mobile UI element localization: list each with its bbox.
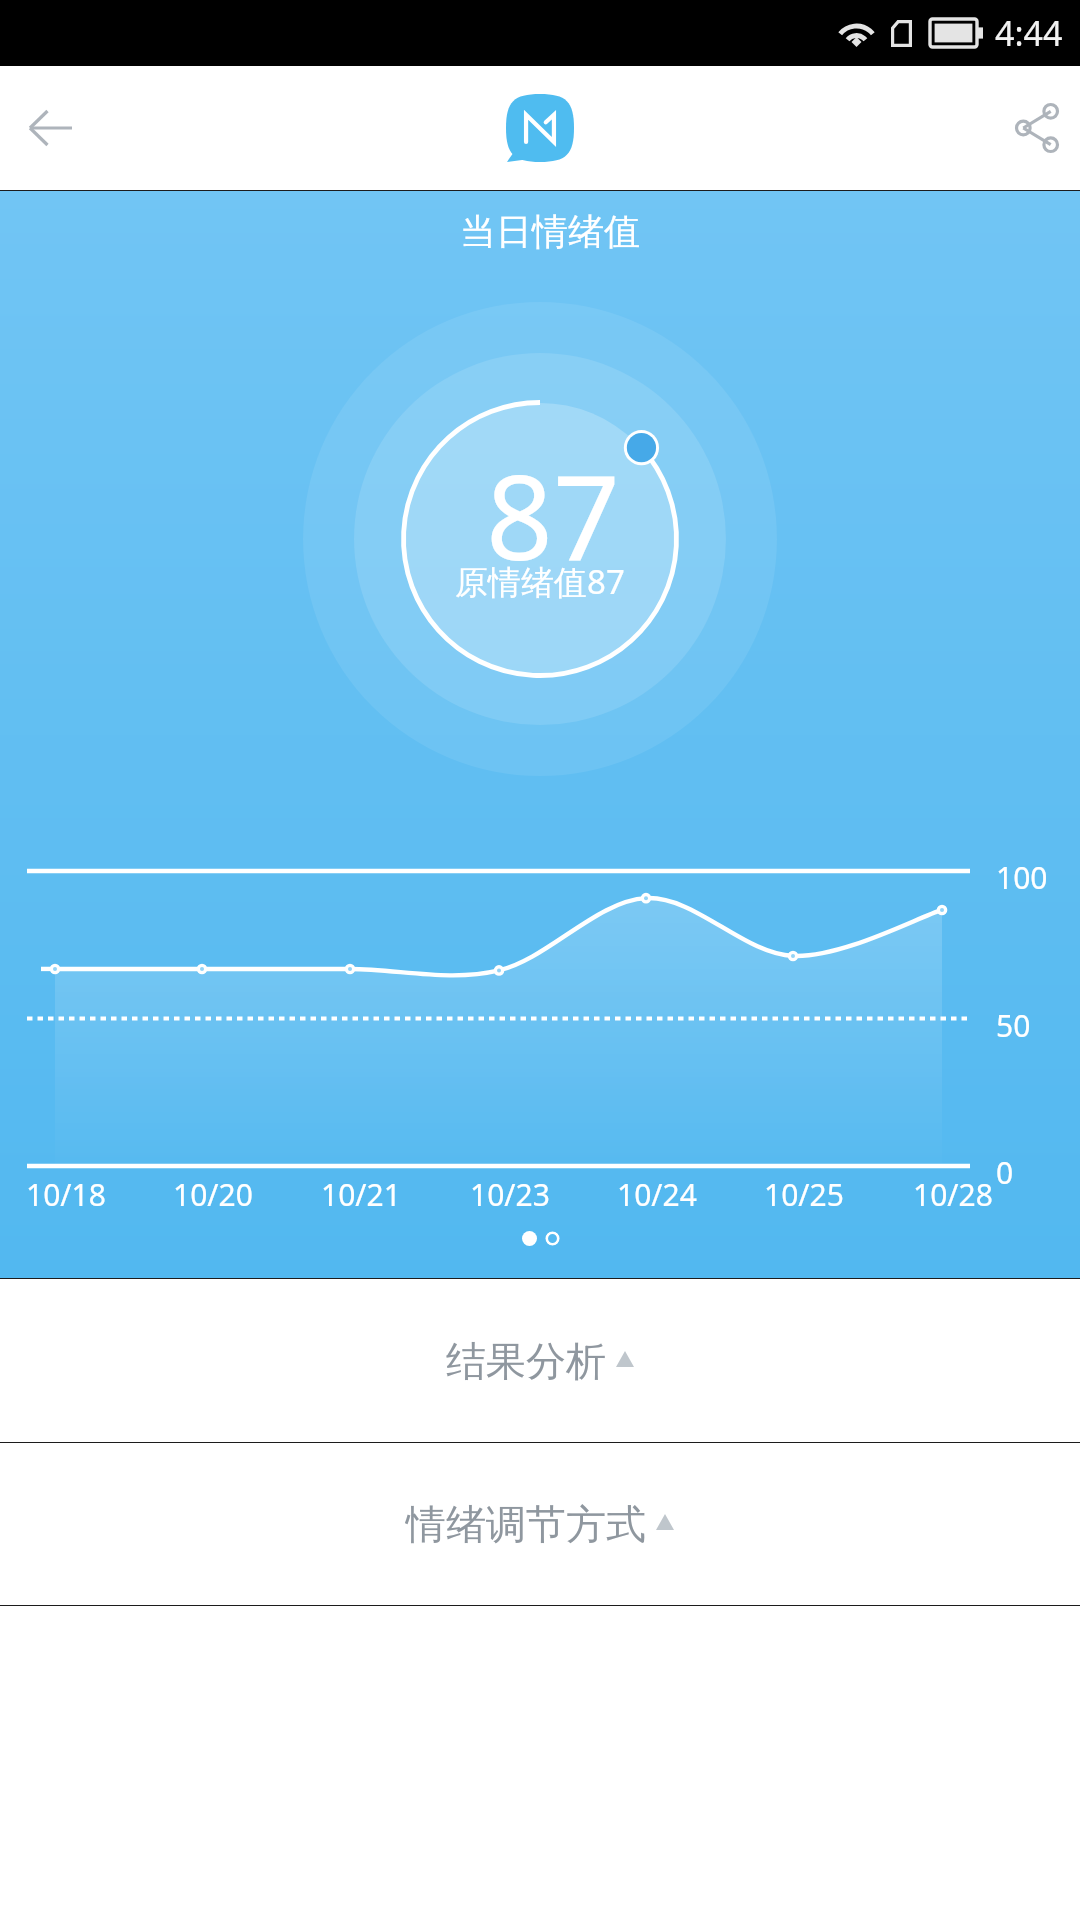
staticText: 10/25 xyxy=(764,1174,844,1215)
staticText: 50 xyxy=(996,1005,1031,1046)
staticText: 10/21 xyxy=(321,1174,401,1215)
button[interactable]: Page 1 xyxy=(522,1231,537,1246)
button[interactable]: Page 2 xyxy=(545,1231,560,1246)
staticText: 原情绪值87 xyxy=(455,559,625,604)
staticText: 87 xyxy=(486,435,620,594)
staticText: 结果分析 xyxy=(446,1336,606,1386)
staticText: 10/18 xyxy=(26,1174,106,1215)
button[interactable]: Back xyxy=(0,66,108,190)
staticText: 4:44 xyxy=(995,10,1063,56)
staticText: 100 xyxy=(996,857,1048,898)
staticText: 10/28 xyxy=(913,1174,993,1215)
staticText: 10/24 xyxy=(617,1174,697,1215)
staticText: 0 xyxy=(996,1152,1014,1193)
button[interactable]: 情绪调节方式 xyxy=(0,1443,1080,1605)
staticText: 10/23 xyxy=(470,1174,550,1215)
button[interactable]: 结果分析 xyxy=(0,1279,1080,1442)
button[interactable]: Share xyxy=(972,66,1080,190)
staticText: 10/20 xyxy=(173,1174,253,1215)
staticText: 当日情绪值 xyxy=(460,209,640,254)
staticText: 情绪调节方式 xyxy=(406,1499,646,1549)
